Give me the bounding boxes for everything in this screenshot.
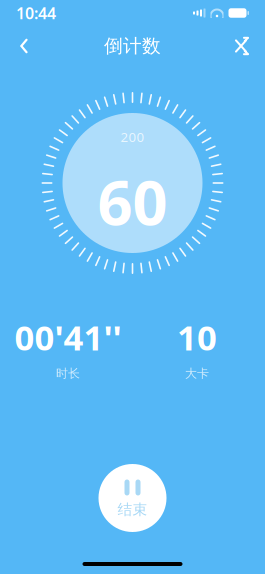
button[interactable]: Back [4, 26, 44, 66]
staticText: 大卡 [185, 366, 209, 381]
staticText: 时长 [56, 366, 80, 381]
staticText: 结束 [117, 500, 147, 518]
staticText: 10 [177, 314, 217, 360]
staticText: 200 [120, 128, 144, 146]
staticText: 00'41'' [14, 314, 121, 360]
staticText: 60 [97, 161, 167, 242]
staticText: 倒计数 [104, 34, 161, 57]
button[interactable]: 结束 [98, 464, 166, 532]
staticText: 10:44 [16, 2, 56, 24]
button[interactable]: Shuffle [221, 26, 261, 66]
